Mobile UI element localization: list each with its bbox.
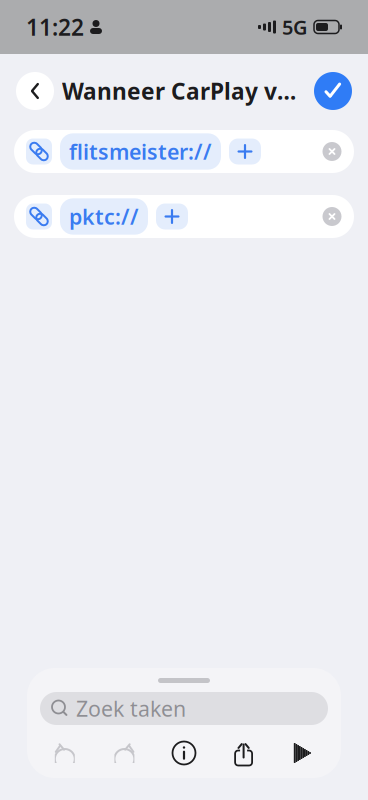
button[interactable]: Done xyxy=(314,72,352,110)
button[interactable]: Back xyxy=(16,72,54,110)
staticText: 5G xyxy=(282,14,308,40)
button[interactable]: Clear xyxy=(322,206,342,226)
button[interactable]: Clear xyxy=(322,141,342,161)
button[interactable]: Info xyxy=(172,741,195,764)
button[interactable]: Undo xyxy=(52,741,78,765)
staticText: pktc:// xyxy=(69,202,139,231)
button[interactable]: Add xyxy=(229,138,261,164)
button[interactable]: Add xyxy=(156,203,188,229)
button[interactable]: Run xyxy=(292,742,314,764)
button[interactable]: Share xyxy=(232,740,256,766)
staticText: Zoek taken xyxy=(76,694,186,723)
button[interactable]: Zoek taken xyxy=(40,692,328,725)
staticText: Wanneer CarPlay verbinding... xyxy=(62,76,306,106)
staticText: flitsmeister:// xyxy=(69,137,212,166)
staticText: 11:22 xyxy=(26,12,84,42)
button[interactable]: Redo xyxy=(111,741,137,765)
